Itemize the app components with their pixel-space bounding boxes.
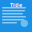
button[interactable]: Action xyxy=(21,20,28,27)
staticText: Title xyxy=(10,1,22,9)
